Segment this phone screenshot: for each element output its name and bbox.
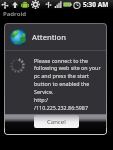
staticText: Cancel bbox=[47, 118, 66, 126]
button[interactable]: Cancel bbox=[34, 115, 79, 128]
staticText: Please connect to the following web site… bbox=[34, 57, 101, 112]
staticText: Attention bbox=[32, 32, 66, 42]
staticText: Padroid bbox=[3, 10, 27, 18]
staticText: 5:30 AM bbox=[83, 0, 109, 9]
